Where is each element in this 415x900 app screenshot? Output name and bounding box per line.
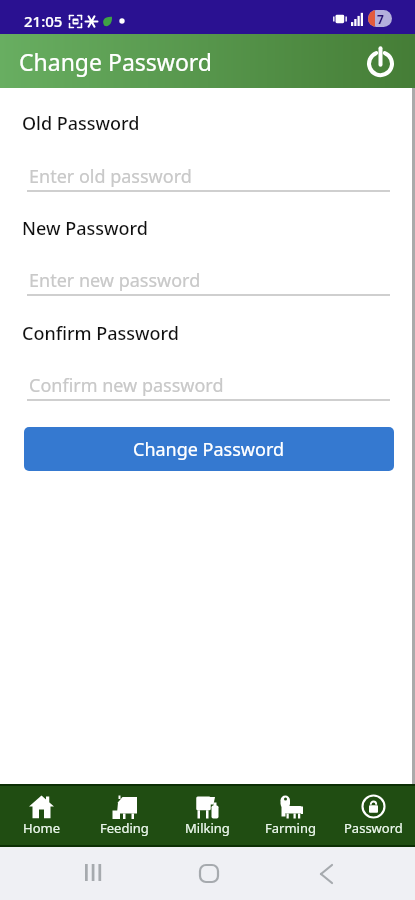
- button[interactable]: Recent apps: [67, 847, 119, 900]
- staticText: 7: [377, 11, 384, 27]
- staticText: Confirm Password: [22, 321, 180, 346]
- staticText: Feeding: [100, 819, 149, 837]
- button[interactable]: Change Password: [24, 427, 394, 471]
- staticText: Milking: [185, 819, 230, 837]
- button[interactable]: Feeding: [83, 784, 166, 847]
- button[interactable]: Milking: [166, 784, 249, 847]
- staticText: 21:05: [24, 11, 63, 31]
- button[interactable]: Back: [300, 847, 352, 900]
- staticText: Enter new password: [29, 268, 201, 293]
- button[interactable]: Password: [332, 784, 415, 847]
- staticText: Home: [23, 819, 60, 837]
- button[interactable]: Home: [0, 784, 83, 847]
- staticText: Confirm new password: [29, 373, 224, 398]
- button[interactable]: Logout: [361, 42, 399, 80]
- staticText: Enter old password: [29, 164, 192, 189]
- staticText: Old Password: [22, 111, 140, 136]
- staticText: Change Password: [133, 437, 285, 462]
- staticText: Change Password: [19, 46, 212, 77]
- button[interactable]: Home: [183, 847, 235, 900]
- staticText: Farming: [265, 819, 316, 837]
- staticText: New Password: [22, 216, 148, 241]
- staticText: Password: [344, 819, 403, 837]
- button[interactable]: Farming: [249, 784, 332, 847]
